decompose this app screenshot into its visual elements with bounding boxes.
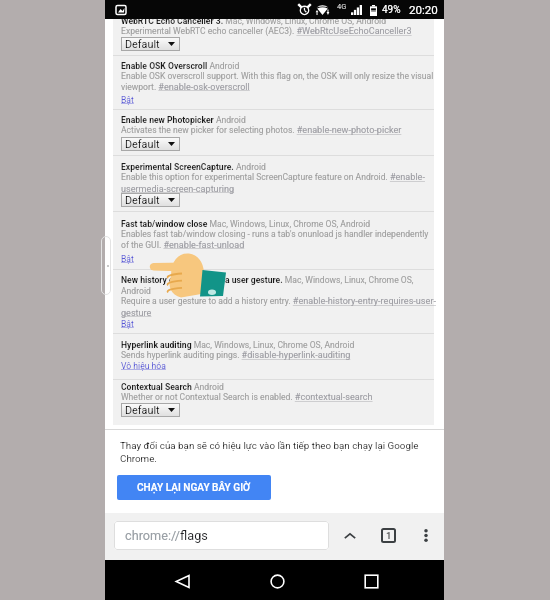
button[interactable]: Bật xyxy=(121,254,134,264)
button[interactable]: Vô hiệu hóa xyxy=(121,361,166,371)
staticText: Experimental ScreenCapture. Android xyxy=(121,162,266,172)
staticText: Whether or not Contextual Search is enab… xyxy=(121,392,373,403)
staticText: Default xyxy=(125,138,160,151)
staticText: Experimental WebRTC echo canceller (AEC3… xyxy=(121,26,412,37)
staticText: New history entry requires a user gestur… xyxy=(121,275,438,296)
staticText: Sends hyperlink auditing pings. #disable… xyxy=(121,350,351,361)
staticText: Thay đổi của bạn sẽ có hiệu lực vào lần … xyxy=(120,440,432,464)
button[interactable]: Home xyxy=(255,560,299,600)
staticText: Enable OSK Overscroll Android xyxy=(121,61,240,71)
button[interactable]: Bật xyxy=(121,95,134,105)
staticText: Default xyxy=(125,38,160,51)
staticText: CHẠY LẠI NGAY BÂY GIỜ xyxy=(137,482,251,494)
staticText: 1 xyxy=(386,530,392,541)
button[interactable]: Tabs xyxy=(378,525,398,545)
button[interactable]: Back xyxy=(160,560,204,600)
staticText: 20:20 xyxy=(409,3,438,17)
button[interactable]: Bật xyxy=(121,319,134,329)
staticText: Enables fast tab/window closing - runs a… xyxy=(121,229,438,250)
button[interactable]: Recent apps xyxy=(349,560,393,600)
button[interactable]: Default xyxy=(121,193,180,207)
button[interactable]: Default xyxy=(121,37,180,51)
button[interactable]: Default xyxy=(121,403,180,417)
staticText: Enable new Photopicker Android xyxy=(121,115,246,125)
button[interactable]: chrome://flags xyxy=(114,521,329,550)
staticText: Contextual Search Android xyxy=(121,382,224,392)
staticText: Fast tab/window close Mac, Windows, Linu… xyxy=(121,219,371,229)
staticText: Enable this option for experimental Scre… xyxy=(121,172,438,194)
button[interactable]: More options xyxy=(415,524,437,546)
staticText: WebRTC Echo Canceller 3. Mac, Windows, L… xyxy=(121,16,386,26)
staticText: chrome://flags xyxy=(125,528,208,543)
staticText: Default xyxy=(125,194,160,207)
staticText: Require a user gesture to add a history … xyxy=(121,296,438,318)
staticText: 4G xyxy=(337,2,347,11)
button[interactable]: Default xyxy=(121,137,180,151)
staticText: 49% xyxy=(382,4,401,16)
button[interactable]: CHẠY LẠI NGAY BÂY GIỜ xyxy=(117,475,271,500)
button[interactable]: Scroll to top xyxy=(333,522,367,550)
staticText: Activates the new picker for selecting p… xyxy=(121,125,402,136)
staticText: Enable OSK overscroll support. With this… xyxy=(121,71,438,92)
staticText: Hyperlink auditing Mac, Windows, Linux, … xyxy=(121,340,355,350)
staticText: Default xyxy=(125,404,160,417)
